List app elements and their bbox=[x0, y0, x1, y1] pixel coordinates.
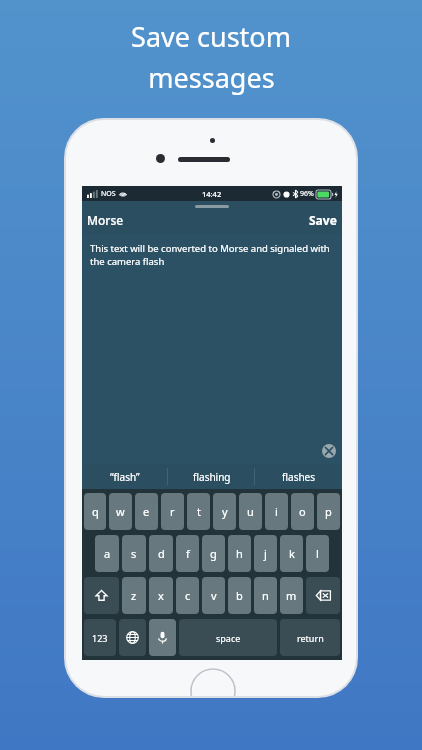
button[interactable]: Save bbox=[309, 212, 337, 228]
staticText: “flash” bbox=[110, 470, 140, 484]
staticText: b bbox=[236, 588, 243, 603]
staticText: c bbox=[185, 588, 191, 603]
staticText: r bbox=[170, 504, 175, 519]
button[interactable]: This text will be converted to Morse and… bbox=[82, 234, 342, 464]
staticText: q bbox=[92, 504, 99, 519]
button[interactable]: v bbox=[202, 577, 225, 614]
staticText: return bbox=[297, 632, 324, 644]
other: Shift bbox=[95, 589, 108, 602]
staticText: v bbox=[211, 588, 217, 603]
button[interactable]: e bbox=[135, 493, 158, 530]
staticText: w bbox=[116, 504, 125, 519]
button[interactable]: m bbox=[280, 577, 303, 614]
button[interactable]: q bbox=[84, 493, 106, 530]
staticText: y bbox=[222, 504, 228, 519]
staticText: l bbox=[316, 546, 319, 561]
staticText: f bbox=[186, 546, 190, 561]
button[interactable]: flashing bbox=[168, 464, 255, 489]
button[interactable]: space bbox=[179, 619, 277, 656]
button[interactable]: r bbox=[161, 493, 184, 530]
button[interactable]: t bbox=[187, 493, 210, 530]
button[interactable]: f bbox=[176, 535, 199, 572]
button[interactable]: j bbox=[254, 535, 277, 572]
button[interactable]: l bbox=[306, 535, 329, 572]
staticText: t bbox=[197, 504, 201, 519]
button[interactable]: z bbox=[122, 577, 146, 614]
staticText: space bbox=[216, 632, 241, 644]
staticText: This text will be converted to Morse and… bbox=[90, 242, 334, 268]
staticText: d bbox=[158, 546, 165, 561]
button[interactable]: flashes bbox=[255, 464, 342, 489]
button[interactable]: x bbox=[149, 577, 173, 614]
staticText: flashing bbox=[193, 470, 231, 484]
staticText: m bbox=[286, 588, 297, 603]
button[interactable]: h bbox=[228, 535, 251, 572]
staticText: Save custom bbox=[131, 18, 291, 55]
button[interactable]: Dictate bbox=[149, 619, 176, 656]
staticText: Save bbox=[309, 212, 337, 228]
button[interactable]: d bbox=[149, 535, 173, 572]
staticText: n bbox=[262, 588, 269, 603]
staticText: NOS bbox=[101, 189, 116, 199]
staticText: Morse bbox=[87, 212, 124, 228]
button[interactable]: g bbox=[202, 535, 225, 572]
staticText: o bbox=[299, 504, 306, 519]
button[interactable]: Clear text bbox=[322, 444, 336, 458]
button[interactable]: 123 bbox=[84, 619, 116, 656]
button[interactable]: k bbox=[280, 535, 303, 572]
staticText: k bbox=[289, 546, 295, 561]
button[interactable]: o bbox=[291, 493, 314, 530]
staticText: g bbox=[210, 546, 217, 561]
staticText: flashes bbox=[282, 470, 316, 484]
staticText: messages bbox=[148, 59, 275, 96]
button[interactable]: Backspace bbox=[306, 577, 340, 614]
button[interactable]: b bbox=[228, 577, 251, 614]
button[interactable]: return bbox=[280, 619, 340, 656]
button[interactable]: w bbox=[109, 493, 132, 530]
button[interactable]: a bbox=[95, 535, 119, 572]
button[interactable]: s bbox=[122, 535, 146, 572]
button[interactable]: Switch keyboard bbox=[119, 619, 146, 656]
staticText: 96% bbox=[300, 189, 314, 199]
staticText: i bbox=[275, 504, 278, 519]
staticText: 123 bbox=[92, 632, 108, 644]
staticText: s bbox=[131, 546, 137, 561]
button[interactable]: c bbox=[176, 577, 199, 614]
button[interactable]: i bbox=[265, 493, 288, 530]
button[interactable]: u bbox=[239, 493, 262, 530]
staticText: p bbox=[325, 504, 332, 519]
button[interactable]: Morse bbox=[87, 212, 124, 228]
staticText: u bbox=[247, 504, 254, 519]
button[interactable]: Home bbox=[190, 668, 236, 696]
button[interactable]: y bbox=[213, 493, 236, 530]
button[interactable]: Shift bbox=[84, 577, 119, 614]
staticText: z bbox=[131, 588, 137, 603]
staticText: 14:42 bbox=[202, 189, 222, 199]
staticText: a bbox=[104, 546, 111, 561]
button[interactable]: “flash” bbox=[82, 464, 168, 489]
staticText: x bbox=[158, 588, 164, 603]
staticText: h bbox=[236, 546, 243, 561]
button[interactable]: n bbox=[254, 577, 277, 614]
staticText: e bbox=[143, 504, 150, 519]
staticText: j bbox=[264, 546, 267, 561]
button[interactable]: p bbox=[317, 493, 340, 530]
